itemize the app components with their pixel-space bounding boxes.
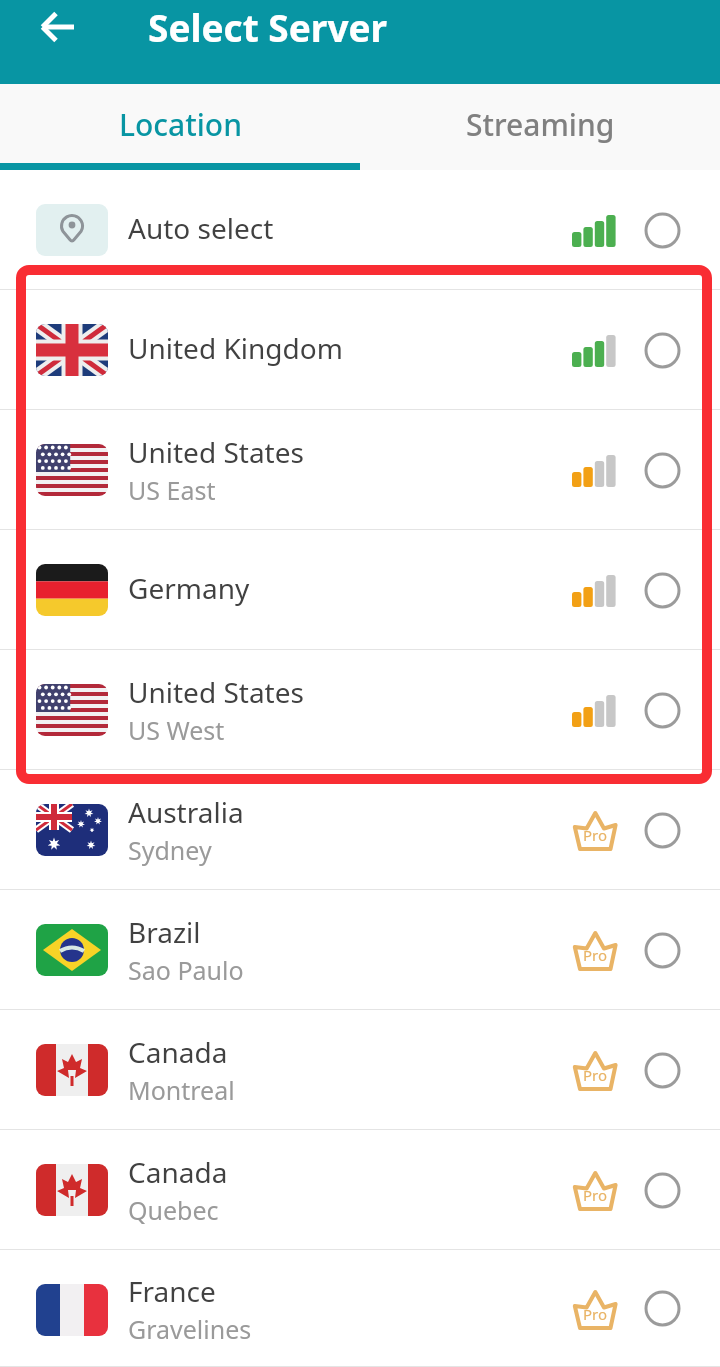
staticText: US West xyxy=(128,713,225,747)
staticText: Pro xyxy=(583,1065,608,1085)
staticText: France xyxy=(128,1272,216,1310)
staticText: Sydney xyxy=(128,833,212,867)
staticText: Streaming xyxy=(466,104,615,145)
button[interactable]: Brazil xyxy=(0,890,720,1010)
staticText: United States xyxy=(128,433,304,471)
staticText: Germany xyxy=(128,569,250,607)
staticText: United Kingdom xyxy=(128,329,343,367)
staticText: Australia xyxy=(128,793,244,831)
button[interactable]: United Kingdom xyxy=(0,290,720,410)
button[interactable]: Canada xyxy=(0,1130,720,1250)
button[interactable]: Auto select xyxy=(0,170,720,290)
staticText: Pro xyxy=(583,825,608,845)
staticText: Location xyxy=(119,104,242,145)
button[interactable]: France xyxy=(0,1250,720,1367)
button[interactable]: Germany xyxy=(0,530,720,650)
staticText: Quebec xyxy=(128,1193,219,1227)
staticText: Pro xyxy=(583,1185,608,1205)
button[interactable]: Location xyxy=(0,84,360,170)
staticText: Pro xyxy=(583,1304,608,1324)
staticText: Canada xyxy=(128,1033,228,1071)
staticText: United States xyxy=(128,673,304,711)
button[interactable]: United States xyxy=(0,410,720,530)
button[interactable]: Streaming xyxy=(360,84,720,170)
staticText: Sao Paulo xyxy=(128,953,244,987)
staticText: US East xyxy=(128,473,216,507)
button[interactable]: Australia xyxy=(0,770,720,890)
staticText: Montreal xyxy=(128,1073,235,1107)
staticText: Canada xyxy=(128,1153,228,1191)
staticText: Auto select xyxy=(128,209,274,247)
staticText: Select Server xyxy=(148,2,388,52)
button[interactable]: Canada xyxy=(0,1010,720,1130)
button[interactable]: United States xyxy=(0,650,720,770)
staticText: Pro xyxy=(583,945,608,965)
staticText: Brazil xyxy=(128,913,201,951)
staticText: Gravelines xyxy=(128,1312,252,1346)
button[interactable] xyxy=(34,3,82,51)
